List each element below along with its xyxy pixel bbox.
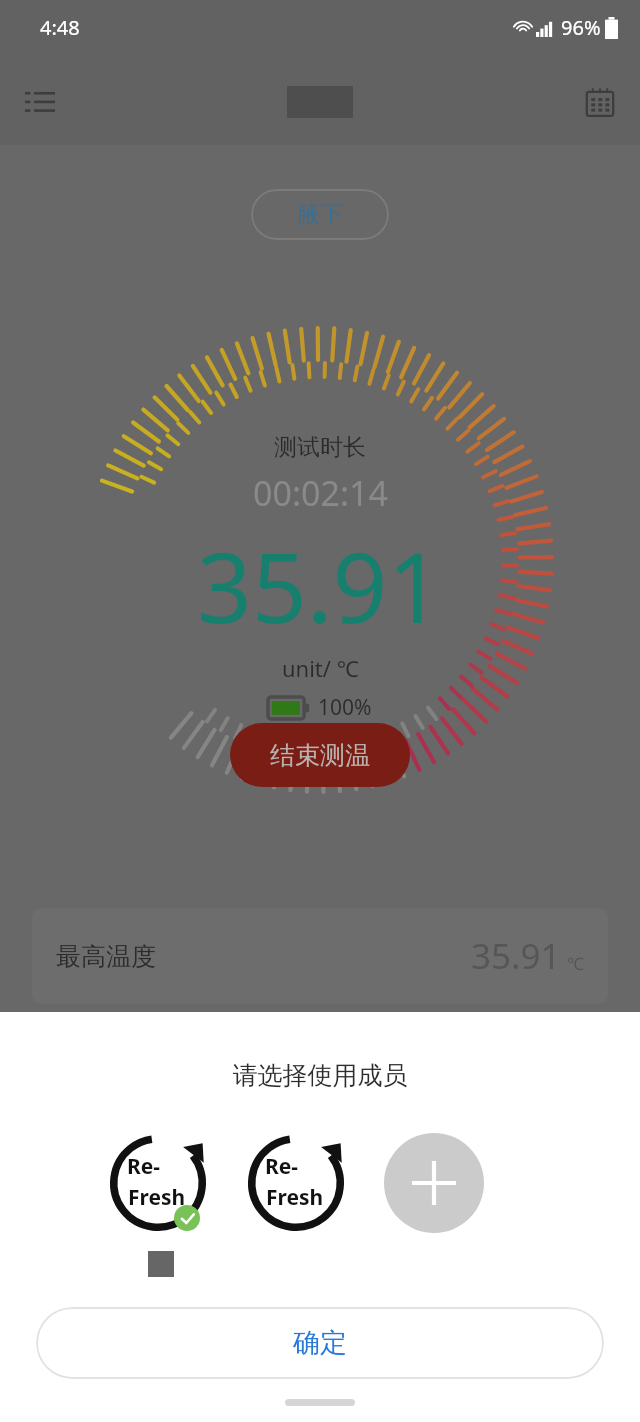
button[interactable]: 腋下 — [251, 189, 389, 240]
button[interactable]: Calendar — [574, 76, 626, 128]
staticText: 96% — [561, 14, 601, 41]
staticText: 腋下 — [297, 200, 343, 229]
button[interactable]: 结束测温 — [230, 723, 410, 787]
staticText: 4:48 — [40, 14, 80, 41]
staticText: unit/ ℃ — [282, 653, 359, 683]
staticText: Re- — [265, 1152, 299, 1181]
button[interactable]: Records list — [14, 76, 66, 128]
staticText: 最高温度 — [56, 941, 156, 972]
staticText: Fresh — [266, 1183, 324, 1212]
button[interactable]: Member Re-Fresh — [108, 1133, 208, 1233]
staticText: ℃ — [567, 952, 584, 975]
staticText: 请选择使用成员 — [0, 1060, 640, 1091]
staticText: 结束测温 — [270, 740, 370, 771]
staticText: 确定 — [293, 1326, 347, 1360]
button[interactable]: 最高温度 — [32, 908, 608, 1004]
button[interactable]: 确定 — [36, 1307, 604, 1379]
staticText: Re- — [127, 1152, 161, 1181]
staticText: 测试时长 — [274, 433, 366, 462]
staticText: Fresh — [128, 1183, 186, 1212]
staticText: 00:02:14 — [253, 470, 388, 516]
button[interactable]: Add member — [384, 1133, 484, 1233]
staticText: 35.91 — [197, 520, 443, 651]
staticText: 35.91 — [471, 932, 561, 980]
staticText: 100% — [318, 693, 372, 722]
button[interactable]: Member Re-Fresh — [246, 1133, 346, 1233]
